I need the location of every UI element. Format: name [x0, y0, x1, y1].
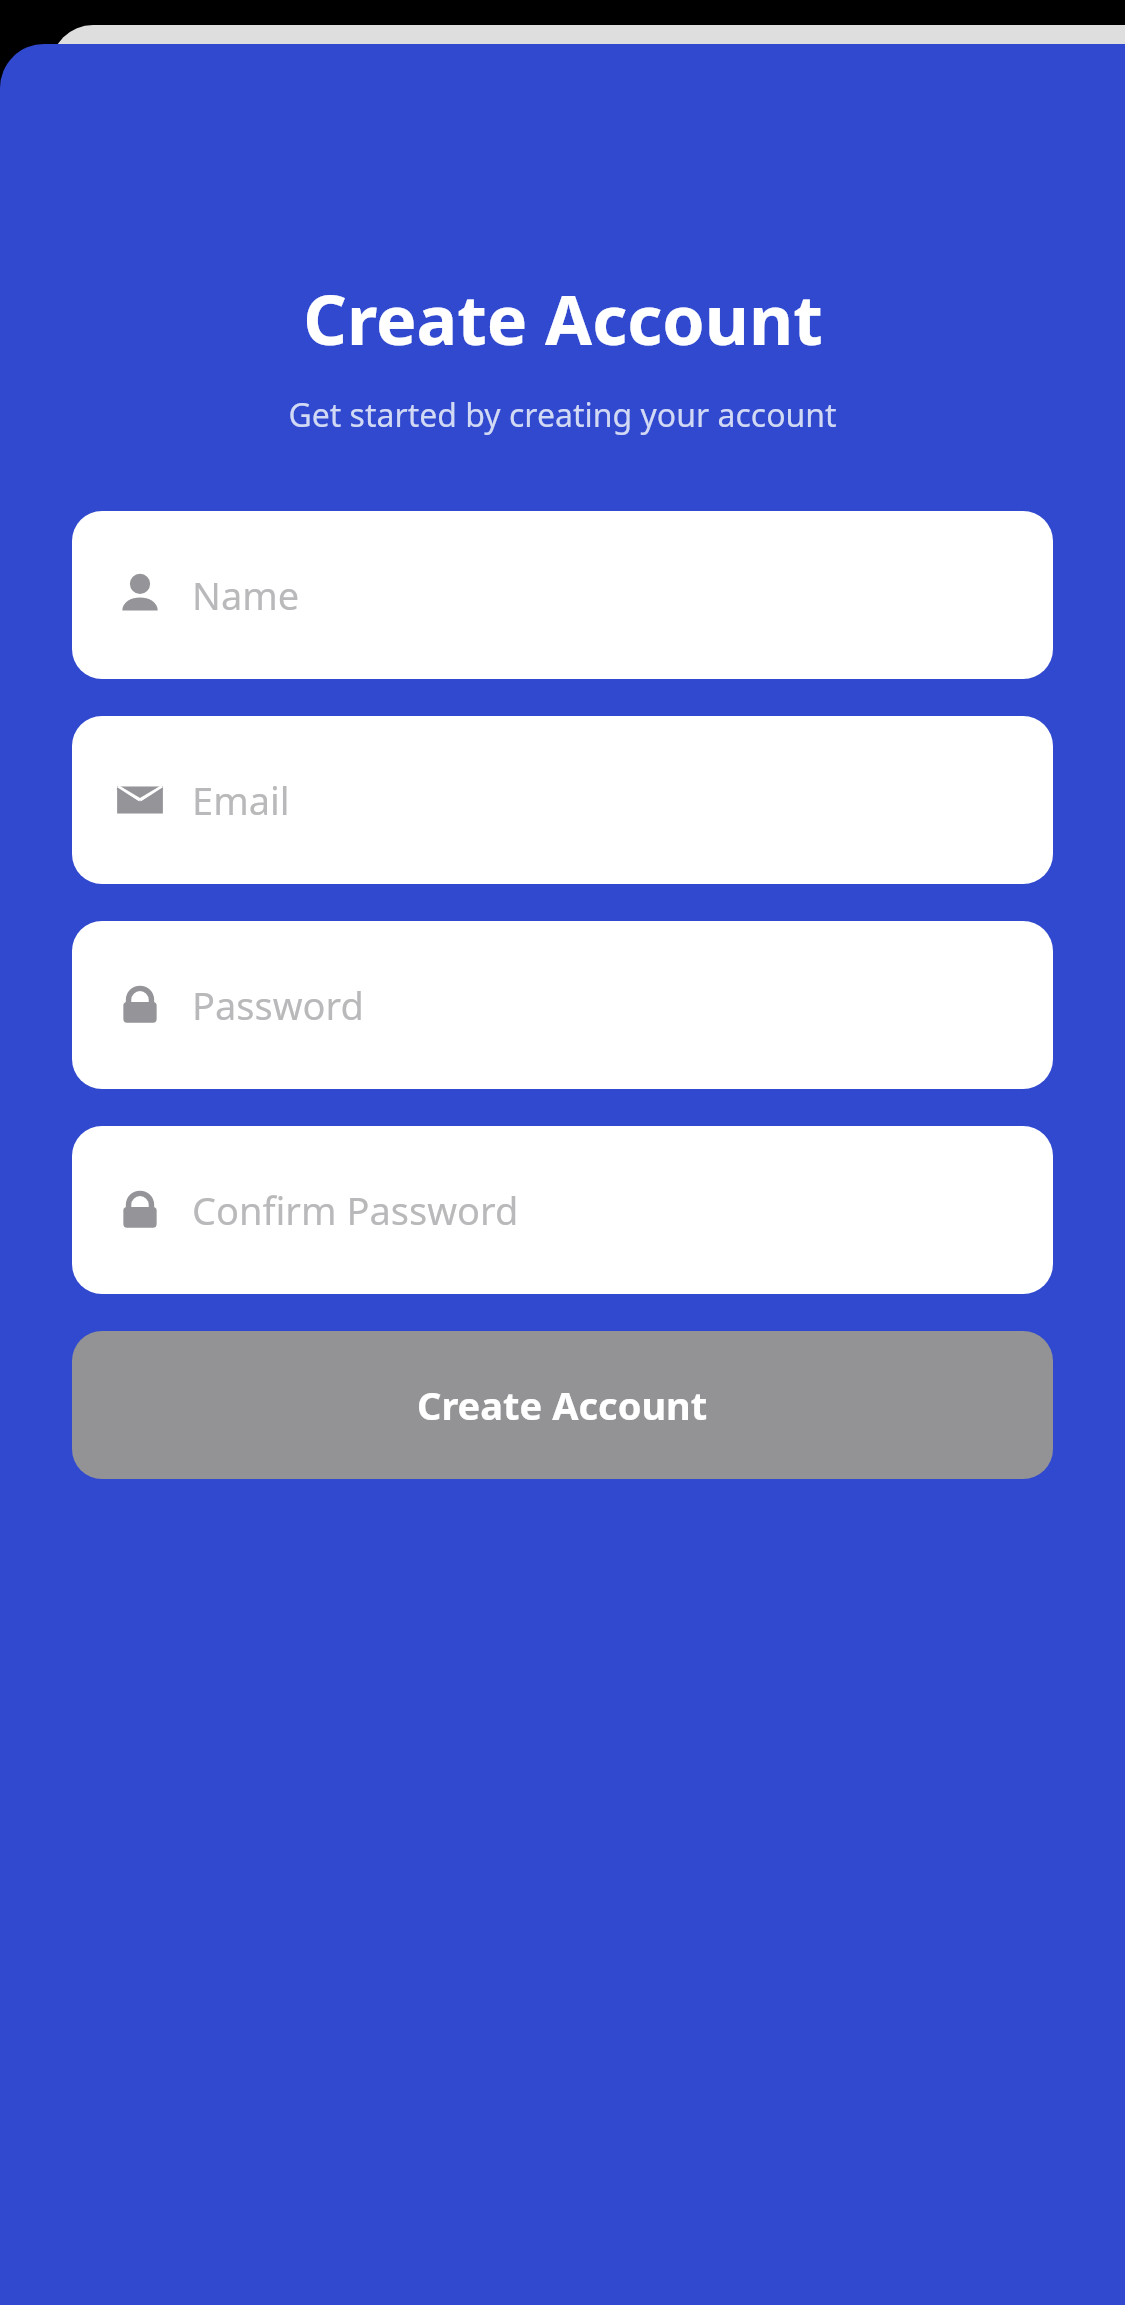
staticText: Password	[192, 979, 364, 1031]
button[interactable]: Name	[72, 511, 1053, 679]
button[interactable]: Create Account	[72, 1331, 1053, 1479]
staticText: Create Account	[303, 272, 823, 365]
staticText: Email	[192, 774, 290, 826]
button[interactable]: Confirm Password	[72, 1126, 1053, 1294]
staticText: Name	[192, 569, 300, 621]
staticText: Confirm Password	[192, 1184, 519, 1236]
button[interactable]: Password	[72, 921, 1053, 1089]
button[interactable]: Email	[72, 716, 1053, 884]
staticText: Create Account	[417, 1379, 708, 1431]
staticText: Get started by creating your account	[288, 393, 837, 437]
